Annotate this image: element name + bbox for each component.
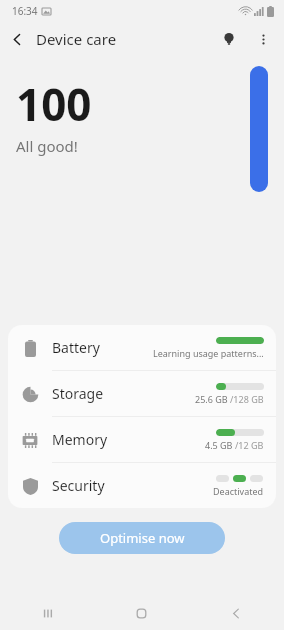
button[interactable]: Back: [0, 22, 34, 56]
staticText: All good!: [16, 136, 78, 156]
staticText: 100: [16, 74, 92, 134]
staticText: Battery: [52, 338, 100, 357]
button[interactable]: More options: [246, 22, 280, 56]
staticText: Optimise now: [100, 529, 185, 547]
staticText: /128 GB: [230, 393, 264, 405]
button[interactable]: Home: [94, 596, 189, 630]
button[interactable]: Optimise now: [59, 522, 225, 554]
staticText: Security: [52, 476, 105, 495]
staticText: 16:34: [12, 4, 38, 18]
staticText: 4.5 GB: [205, 439, 235, 451]
button[interactable]: Security: [8, 463, 276, 508]
staticText: Storage: [52, 384, 104, 403]
staticText: Memory: [52, 430, 108, 449]
button[interactable]: Storage: [8, 371, 276, 417]
button[interactable]: Memory: [8, 417, 276, 463]
button[interactable]: Tips: [212, 22, 246, 56]
button[interactable]: Back: [189, 596, 284, 630]
button[interactable]: Battery: [8, 325, 276, 371]
button[interactable]: Recent apps: [0, 596, 94, 630]
staticText: 25.6 GB: [195, 393, 230, 405]
staticText: Learning usage patterns...: [153, 347, 264, 359]
staticText: /12 GB: [235, 439, 264, 451]
staticText: Deactivated: [213, 485, 264, 497]
staticText: Device care: [36, 29, 117, 49]
